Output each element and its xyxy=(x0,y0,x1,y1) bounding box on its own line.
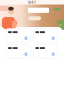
button[interactable] xyxy=(33,29,58,42)
button[interactable] xyxy=(6,29,31,42)
staticText: 9:41 xyxy=(28,0,36,5)
button[interactable] xyxy=(6,44,31,58)
button[interactable] xyxy=(33,44,58,58)
